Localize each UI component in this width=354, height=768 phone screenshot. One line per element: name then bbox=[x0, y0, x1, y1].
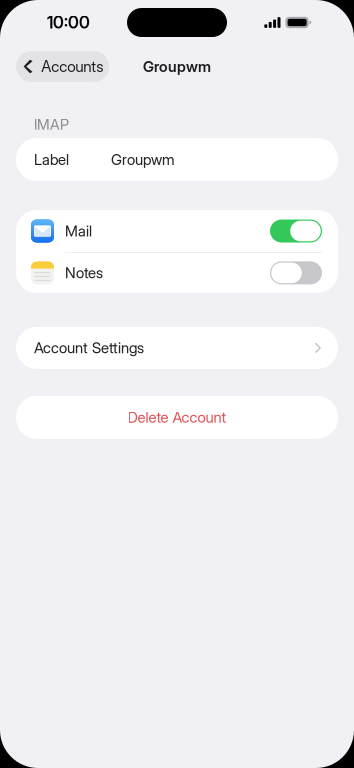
staticText: Delete Account bbox=[127, 408, 226, 426]
staticText: Notes bbox=[65, 264, 103, 282]
staticText: Groupwm bbox=[111, 150, 175, 169]
button[interactable]: Account Settings bbox=[16, 327, 338, 369]
staticText: Account Settings bbox=[34, 339, 144, 357]
staticText: Mail bbox=[65, 222, 92, 240]
button[interactable]: Mail bbox=[16, 210, 338, 252]
button[interactable]: Label bbox=[16, 138, 338, 181]
staticText: 10:00 bbox=[47, 12, 90, 33]
staticText: Groupwm bbox=[143, 57, 211, 76]
staticText: Label bbox=[34, 150, 69, 169]
button[interactable]: Delete Account bbox=[16, 396, 338, 439]
staticText: Accounts bbox=[41, 57, 103, 76]
button[interactable]: Accounts bbox=[16, 51, 109, 82]
staticText: IMAP bbox=[34, 116, 69, 133]
button[interactable]: Notes bbox=[16, 253, 338, 293]
